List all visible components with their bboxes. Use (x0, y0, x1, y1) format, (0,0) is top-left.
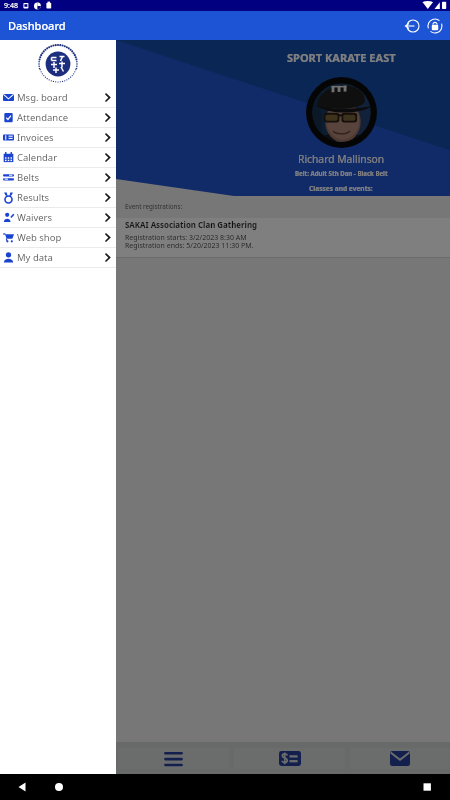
button[interactable]: Calendar (0, 148, 116, 167)
button[interactable]: Msg. board (0, 88, 116, 107)
staticText: Classes and events: (309, 184, 373, 193)
staticText: Richard Mallinson (298, 152, 385, 166)
button[interactable]: My data (0, 248, 116, 267)
staticText: Dashboard (8, 18, 66, 33)
button[interactable]: Menu (118, 748, 229, 769)
staticText: Invoices (17, 131, 54, 144)
staticText: SAKAI Association Clan Gathering (125, 220, 258, 231)
button[interactable]: Invoices (0, 128, 116, 147)
button[interactable]: Logout (401, 14, 425, 38)
staticText: Attendance (17, 111, 69, 124)
button[interactable]: Messages (350, 748, 450, 769)
staticText: Msg. board (17, 91, 68, 104)
button[interactable]: Waivers (0, 208, 116, 227)
button[interactable]: SAKAI Association Clan Gathering (116, 218, 450, 257)
button[interactable]: Belts (0, 168, 116, 187)
staticText: Belt: Adult 5th Dan - Black Belt (295, 169, 388, 177)
button[interactable]: Results (0, 188, 116, 207)
staticText: Registration starts: 3/2/2023 8:30 AM (125, 233, 247, 243)
button[interactable]: Invoices (234, 748, 345, 769)
staticText: Results (17, 191, 50, 204)
staticText: SPORT KARATE EAST (287, 50, 396, 65)
staticText: Calendar (17, 151, 58, 164)
staticText: Event registrations: (125, 202, 183, 211)
staticText: Web shop (17, 231, 62, 244)
staticText: Waivers (17, 211, 53, 224)
button[interactable]: Web shop (0, 228, 116, 247)
staticText: My data (17, 251, 53, 264)
staticText: 9:48 (4, 1, 18, 11)
button[interactable]: Privacy sync (423, 14, 447, 38)
button[interactable]: Attendance (0, 108, 116, 127)
staticText: Registration ends: 5/20/2023 11:30 PM. (125, 241, 254, 251)
staticText: Belts (17, 171, 39, 184)
